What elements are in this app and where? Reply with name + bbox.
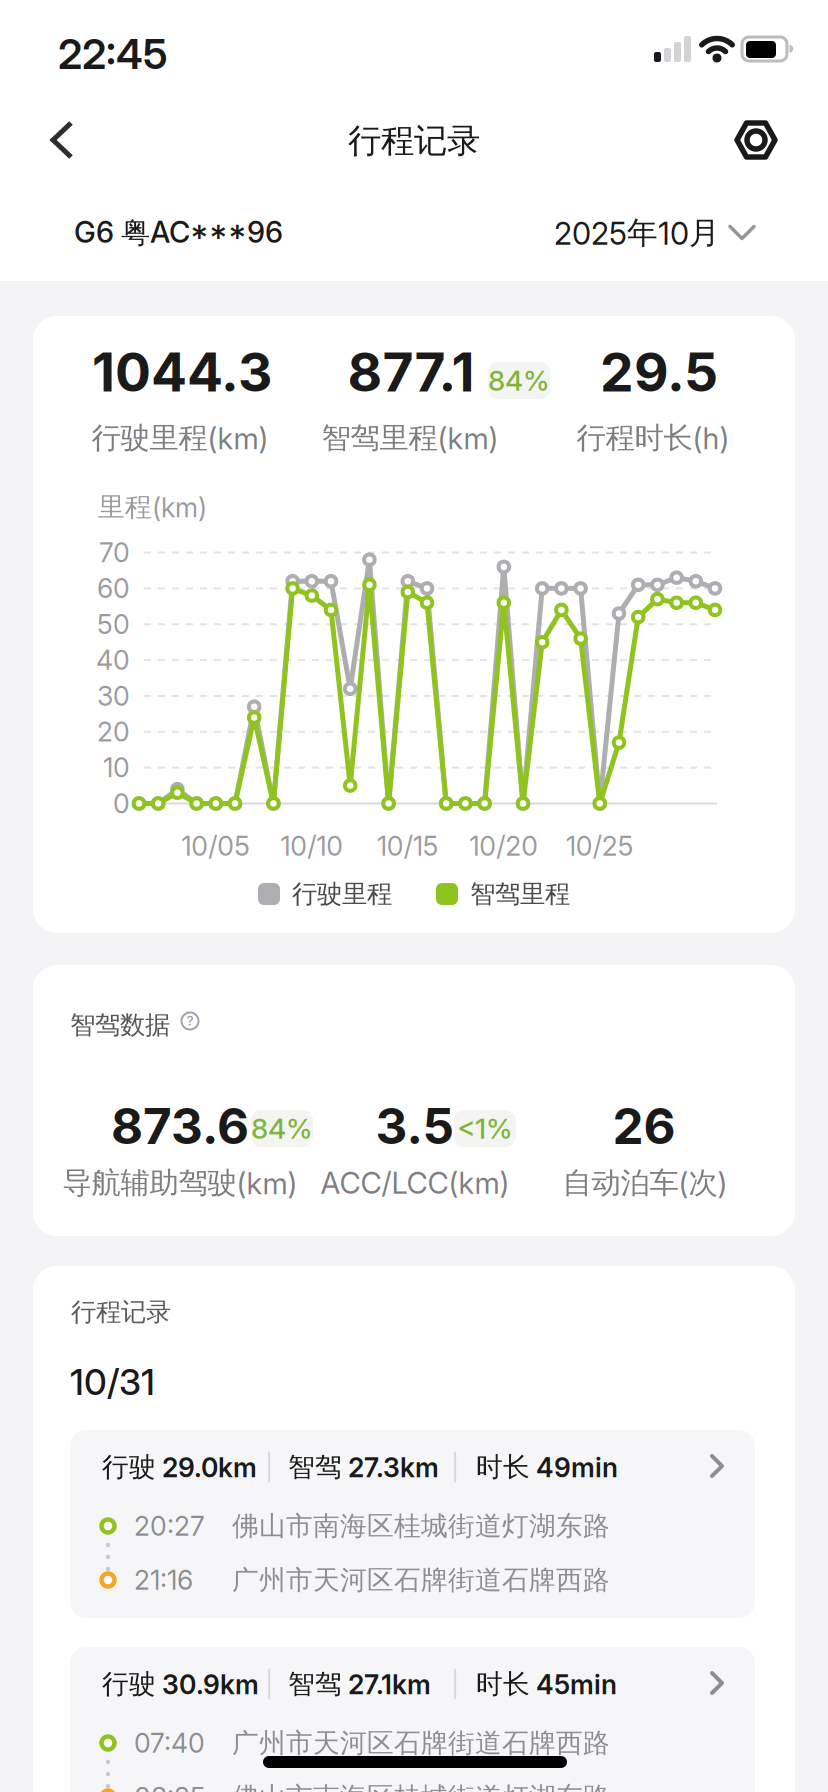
button[interactable]: Settings: [728, 115, 784, 165]
staticText: 智驾里程(km): [321, 420, 498, 456]
staticText: 84%: [488, 364, 550, 397]
staticText: 导航辅助驾驶(km): [62, 1165, 297, 1201]
staticText: 广州市天河区石牌街道石牌西路: [232, 1564, 610, 1596]
staticText: 行驶 29.0km: [102, 1451, 257, 1483]
button[interactable]: 行驶 29.0km: [70, 1430, 755, 1618]
staticText: 60: [97, 573, 130, 604]
staticText: 10/15: [377, 830, 439, 862]
staticText: 10/20: [469, 830, 538, 862]
staticText: 40: [96, 644, 130, 676]
staticText: 智驾 27.3km: [288, 1451, 439, 1483]
staticText: 20:27: [134, 1510, 205, 1542]
staticText: 智驾数据: [70, 1009, 170, 1040]
staticText: 行程记录: [71, 1296, 171, 1327]
staticText: 2025年10月: [554, 214, 720, 252]
staticText: 行驶里程: [292, 878, 392, 909]
staticText: 26: [612, 1097, 675, 1155]
staticText: 10/25: [566, 830, 634, 862]
staticText: 21:16: [134, 1564, 193, 1596]
staticText: 佛山市南海区桂城街道灯湖东路: [232, 1781, 610, 1792]
staticText: 佛山市南海区桂城街道灯湖东路: [232, 1510, 610, 1542]
staticText: 里程(km): [98, 491, 207, 523]
staticText: 时长 49min: [476, 1451, 618, 1483]
staticText: 10: [103, 752, 130, 783]
staticText: 行程时长(h): [576, 420, 729, 456]
staticText: 22:45: [58, 30, 168, 78]
staticText: |: [451, 1452, 459, 1482]
staticText: 行程记录: [348, 120, 480, 161]
staticText: 877.1: [347, 340, 474, 403]
staticText: 时长 45min: [476, 1668, 617, 1700]
staticText: 29.5: [600, 340, 718, 403]
staticText: 20: [97, 716, 130, 748]
staticText: 智驾 27.1km: [288, 1668, 431, 1700]
staticText: 10/31: [70, 1361, 155, 1403]
staticText: G6 粤AC***96: [74, 215, 283, 251]
staticText: ?: [186, 1013, 193, 1029]
staticText: 30: [97, 680, 130, 712]
staticText: 873.6: [111, 1097, 249, 1155]
button[interactable]: 2025年10月: [554, 208, 754, 258]
staticText: 10/05: [181, 830, 250, 862]
staticText: 84%: [251, 1112, 313, 1145]
staticText: |: [265, 1452, 273, 1482]
button[interactable]: 行驶 30.9km: [70, 1647, 755, 1792]
staticText: 10/10: [280, 830, 343, 862]
staticText: 07:40: [134, 1727, 205, 1759]
staticText: 0: [113, 788, 130, 819]
staticText: 08:25: [134, 1781, 206, 1792]
staticText: 70: [99, 537, 130, 568]
staticText: <1%: [457, 1112, 513, 1145]
button[interactable]: Back: [30, 115, 90, 165]
staticText: 50: [97, 608, 130, 640]
staticText: |: [451, 1669, 459, 1699]
staticText: 广州市天河区石牌街道石牌西路: [232, 1727, 610, 1759]
staticText: ACC/LCC(km): [320, 1166, 509, 1200]
staticText: 1044.3: [92, 340, 272, 403]
staticText: 行驶 30.9km: [102, 1668, 259, 1700]
staticText: 3.5: [375, 1097, 454, 1155]
staticText: |: [265, 1669, 273, 1699]
button[interactable]: About assisted-driving data: [172, 1003, 208, 1039]
staticText: 自动泊车(次): [562, 1165, 727, 1201]
staticText: 智驾里程: [470, 878, 570, 909]
staticText: 行驶里程(km): [91, 420, 268, 456]
